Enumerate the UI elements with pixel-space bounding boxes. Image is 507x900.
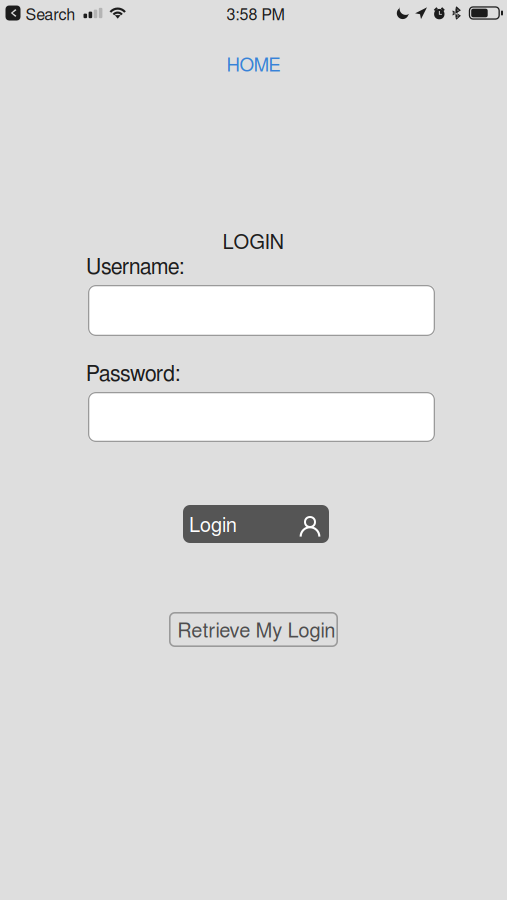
staticText: LOGIN (222, 233, 284, 253)
staticText: HOME (226, 57, 280, 75)
button[interactable]: HOME (0, 53, 507, 79)
staticText: Search (25, 7, 75, 23)
button[interactable]: Retrieve My Login (169, 612, 338, 647)
button[interactable]: Username (88, 285, 435, 336)
button[interactable]: Login (183, 505, 329, 543)
staticText: Login (189, 516, 237, 536)
button[interactable]: Back to Search (5, 2, 75, 23)
button[interactable]: Password (88, 392, 435, 442)
staticText: Password: (86, 364, 180, 385)
staticText: 3:58 PM (227, 7, 286, 23)
staticText: Username: (86, 257, 184, 278)
staticText: Retrieve My Login (177, 621, 335, 641)
